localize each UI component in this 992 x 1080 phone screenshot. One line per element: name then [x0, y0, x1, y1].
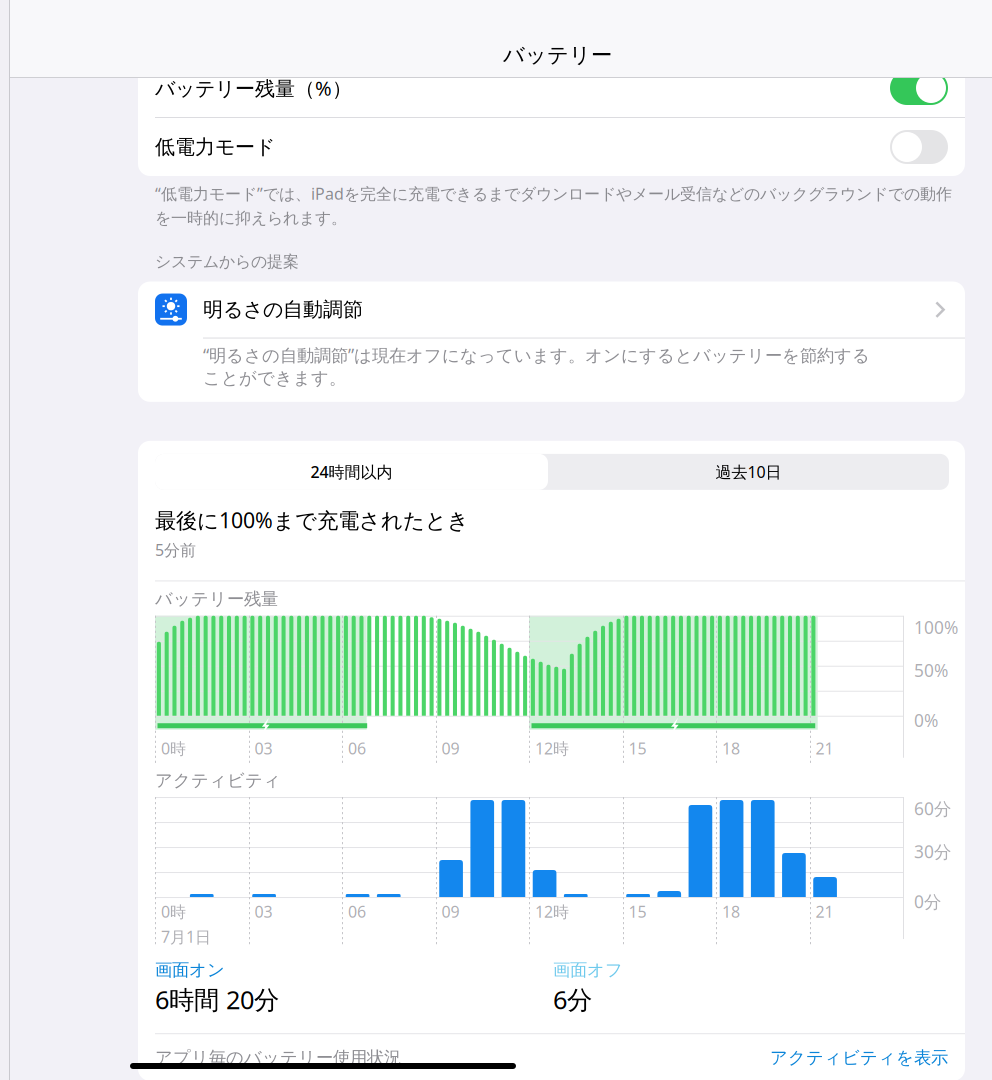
staticText: 09	[441, 901, 459, 922]
staticText: 明るさの自動調節	[203, 297, 363, 322]
button[interactable]: 低電力モード	[138, 118, 965, 176]
staticText: 50%	[914, 659, 948, 682]
staticText: アプリ毎のバッテリー使用状況	[155, 1047, 401, 1068]
staticText: 6分	[553, 983, 592, 1016]
staticText: 6時間 20分	[155, 983, 279, 1016]
staticText: 30分	[914, 840, 951, 863]
staticText: 過去10日	[715, 461, 781, 482]
staticText: 21	[815, 901, 833, 922]
staticText: 24時間以内	[310, 461, 392, 482]
staticText: 06	[348, 738, 366, 759]
staticText: 03	[254, 738, 272, 759]
staticText: 0分	[914, 890, 941, 913]
button[interactable]: 明るさの自動調節	[138, 282, 965, 338]
staticText: 画面オフ	[553, 959, 623, 981]
staticText: 09	[441, 738, 459, 759]
staticText: 100%	[914, 616, 958, 639]
staticText: システムからの提案	[155, 252, 299, 272]
staticText: 21	[815, 738, 833, 759]
staticText: 画面オン	[155, 959, 225, 981]
staticText: 低電力モード	[155, 135, 275, 159]
staticText: を一時的に抑えられます。	[155, 208, 347, 228]
staticText: 18	[722, 738, 740, 759]
button[interactable]: 過去10日	[548, 454, 949, 490]
button[interactable]: アクティビティを表示	[770, 1047, 948, 1068]
staticText: ことができます。	[203, 368, 346, 389]
staticText: バッテリー残量（%）	[155, 75, 352, 101]
staticText: 12時	[535, 901, 569, 922]
staticText: “明るさの自動調節”は現在オフになっています。オンにするとバッテリーを節約する	[203, 344, 870, 367]
staticText: 12時	[535, 738, 569, 759]
staticText: 最後に100%まで充電されたとき	[155, 506, 469, 534]
staticText: 15	[628, 901, 646, 922]
staticText: 0%	[914, 709, 938, 732]
staticText: 03	[254, 901, 272, 922]
button[interactable]: 24時間以内	[155, 454, 548, 490]
staticText: 7月1日	[161, 926, 211, 947]
staticText: アクティビティを表示	[770, 1047, 948, 1068]
staticText: バッテリー残量	[155, 588, 278, 610]
staticText: 06	[348, 901, 366, 922]
staticText: 18	[722, 901, 740, 922]
staticText: 0時	[161, 738, 186, 759]
staticText: 60分	[914, 797, 951, 820]
staticText: バッテリー	[503, 42, 612, 68]
staticText: アクティビティ	[155, 770, 281, 791]
staticText: “低電力モード”では、iPadを完全に充電できるまでダウンロードやメール受信など…	[155, 183, 952, 204]
staticText: 5分前	[155, 539, 196, 560]
staticText: 15	[628, 738, 646, 759]
button[interactable]: バッテリー残量（%）	[138, 59, 965, 117]
staticText: 0時	[161, 901, 186, 922]
